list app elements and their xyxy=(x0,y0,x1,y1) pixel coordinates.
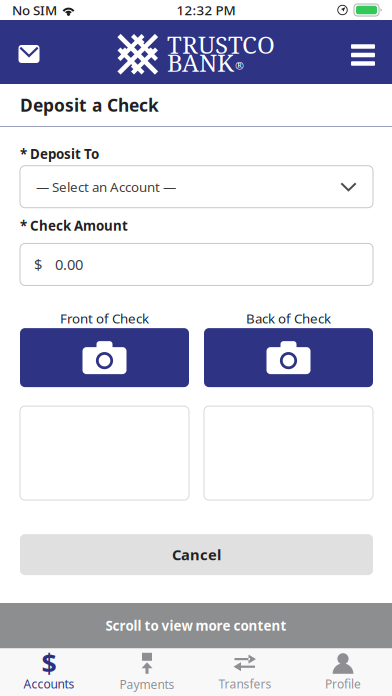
staticText: 12:32 PM xyxy=(176,1,235,19)
button[interactable]: $ xyxy=(0,648,98,696)
staticText: * Deposit To xyxy=(20,145,99,163)
button[interactable]: Payments xyxy=(98,648,196,696)
staticText: Deposit a Check xyxy=(20,93,159,116)
staticText: Profile xyxy=(325,676,361,692)
staticText: 0.00 xyxy=(55,255,83,274)
button[interactable]: Cancel xyxy=(20,534,373,575)
button[interactable]: Transfers xyxy=(196,648,294,696)
button[interactable]: Messages xyxy=(0,20,58,84)
staticText: Front of Check xyxy=(60,309,149,327)
staticText: Cancel xyxy=(172,545,221,564)
staticText: No SIM xyxy=(12,1,57,19)
staticText: Scroll to view more content xyxy=(105,617,286,634)
staticText: * Check Amount xyxy=(20,217,128,234)
staticText: ® xyxy=(235,58,244,73)
staticText: Accounts xyxy=(23,676,74,692)
button[interactable]: Capture back of check xyxy=(204,328,373,387)
staticText: — Select an Account — xyxy=(36,178,176,196)
staticText: BANK xyxy=(167,46,234,79)
staticText: $ xyxy=(41,646,56,681)
staticText: $ xyxy=(34,255,42,274)
staticText: TRUSTCO xyxy=(167,28,275,61)
button[interactable]: Menu xyxy=(334,20,392,84)
staticText: Payments xyxy=(119,676,174,692)
staticText: Back of Check xyxy=(246,309,331,327)
button[interactable]: — Select an Account — xyxy=(20,166,373,208)
button[interactable]: Profile xyxy=(294,648,392,696)
staticText: Transfers xyxy=(218,676,271,692)
button[interactable]: Capture front of check xyxy=(20,328,189,387)
